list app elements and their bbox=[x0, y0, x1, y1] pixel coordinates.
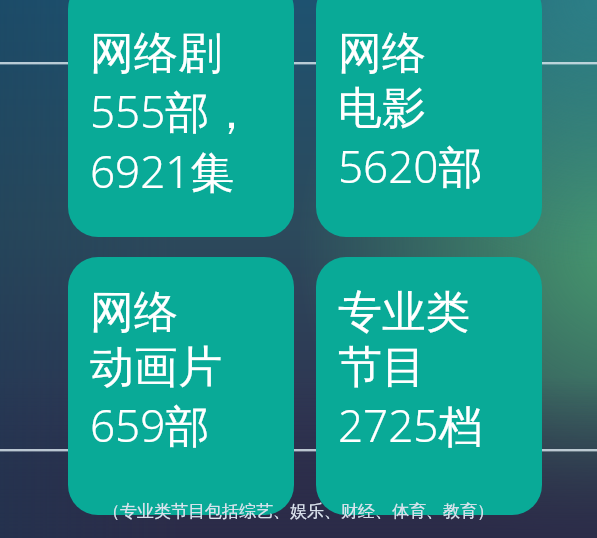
staticText: 专业类 bbox=[338, 285, 470, 340]
staticText: 网络 bbox=[90, 285, 178, 340]
button[interactable]: 网络电影 5620部 bbox=[316, 0, 542, 237]
staticText: 659部 bbox=[90, 395, 210, 455]
staticText: 动画片 bbox=[90, 340, 222, 395]
staticText: 节目 bbox=[338, 340, 426, 395]
staticText: 网络 bbox=[338, 26, 426, 81]
staticText: （专业类节目包括综艺、娱乐、财经、体育、教育） bbox=[103, 501, 494, 522]
button[interactable]: 网络剧 555部 6921集 bbox=[68, 0, 294, 237]
staticText: 网络剧 bbox=[90, 26, 222, 81]
button[interactable]: 网络动画片 659部 bbox=[68, 257, 294, 515]
staticText: 555部， bbox=[90, 81, 254, 141]
button[interactable]: 专业类节目 2725档 bbox=[316, 257, 542, 515]
staticText: 电影 bbox=[338, 81, 426, 136]
staticText: 2725档 bbox=[338, 395, 483, 455]
staticText: 5620部 bbox=[338, 136, 483, 196]
staticText: 6921集 bbox=[90, 141, 235, 201]
